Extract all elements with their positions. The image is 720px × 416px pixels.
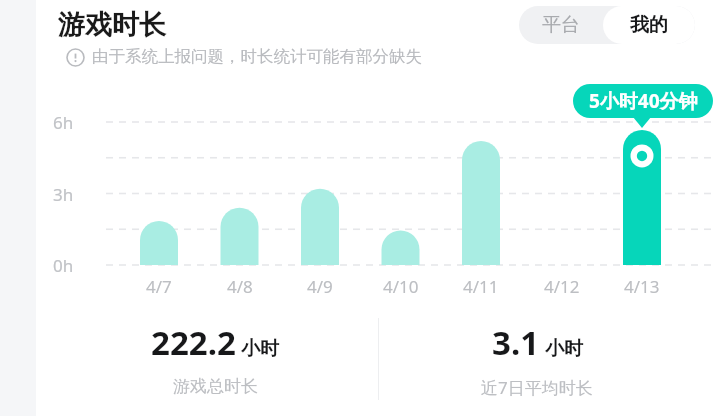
staticText: 平台 (542, 13, 580, 37)
button[interactable]: 平台 (519, 6, 603, 44)
staticText: 游戏时长 (58, 8, 166, 42)
staticText: 4/9 (307, 275, 333, 298)
staticText: 3h (53, 183, 74, 205)
staticText: 4/11 (463, 275, 499, 298)
staticText: 3.1 (492, 320, 540, 365)
staticText: 4/10 (383, 275, 419, 298)
staticText: 小时 (241, 337, 279, 361)
staticText: 4/12 (544, 275, 580, 298)
staticText: 4/7 (146, 275, 172, 298)
button[interactable]: 我的 (603, 6, 695, 44)
staticText: 5小时40分钟 (589, 88, 698, 114)
staticText: 游戏总时长 (173, 376, 258, 397)
staticText: 4/13 (624, 275, 660, 298)
staticText: 小时 (545, 337, 583, 361)
staticText: 由于系统上报问题，时长统计可能有部分缺失 (92, 46, 422, 67)
button[interactable]: 3.1 (387, 320, 687, 399)
staticText: 近7日平均时长 (481, 376, 593, 399)
staticText: 6h (53, 111, 74, 133)
button[interactable]: 222.2 (65, 320, 365, 397)
staticText: 4/8 (227, 275, 253, 298)
staticText: 0h (53, 254, 74, 276)
staticText: 222.2 (151, 320, 236, 365)
staticText: 我的 (630, 13, 668, 37)
other: Warning (66, 48, 85, 67)
